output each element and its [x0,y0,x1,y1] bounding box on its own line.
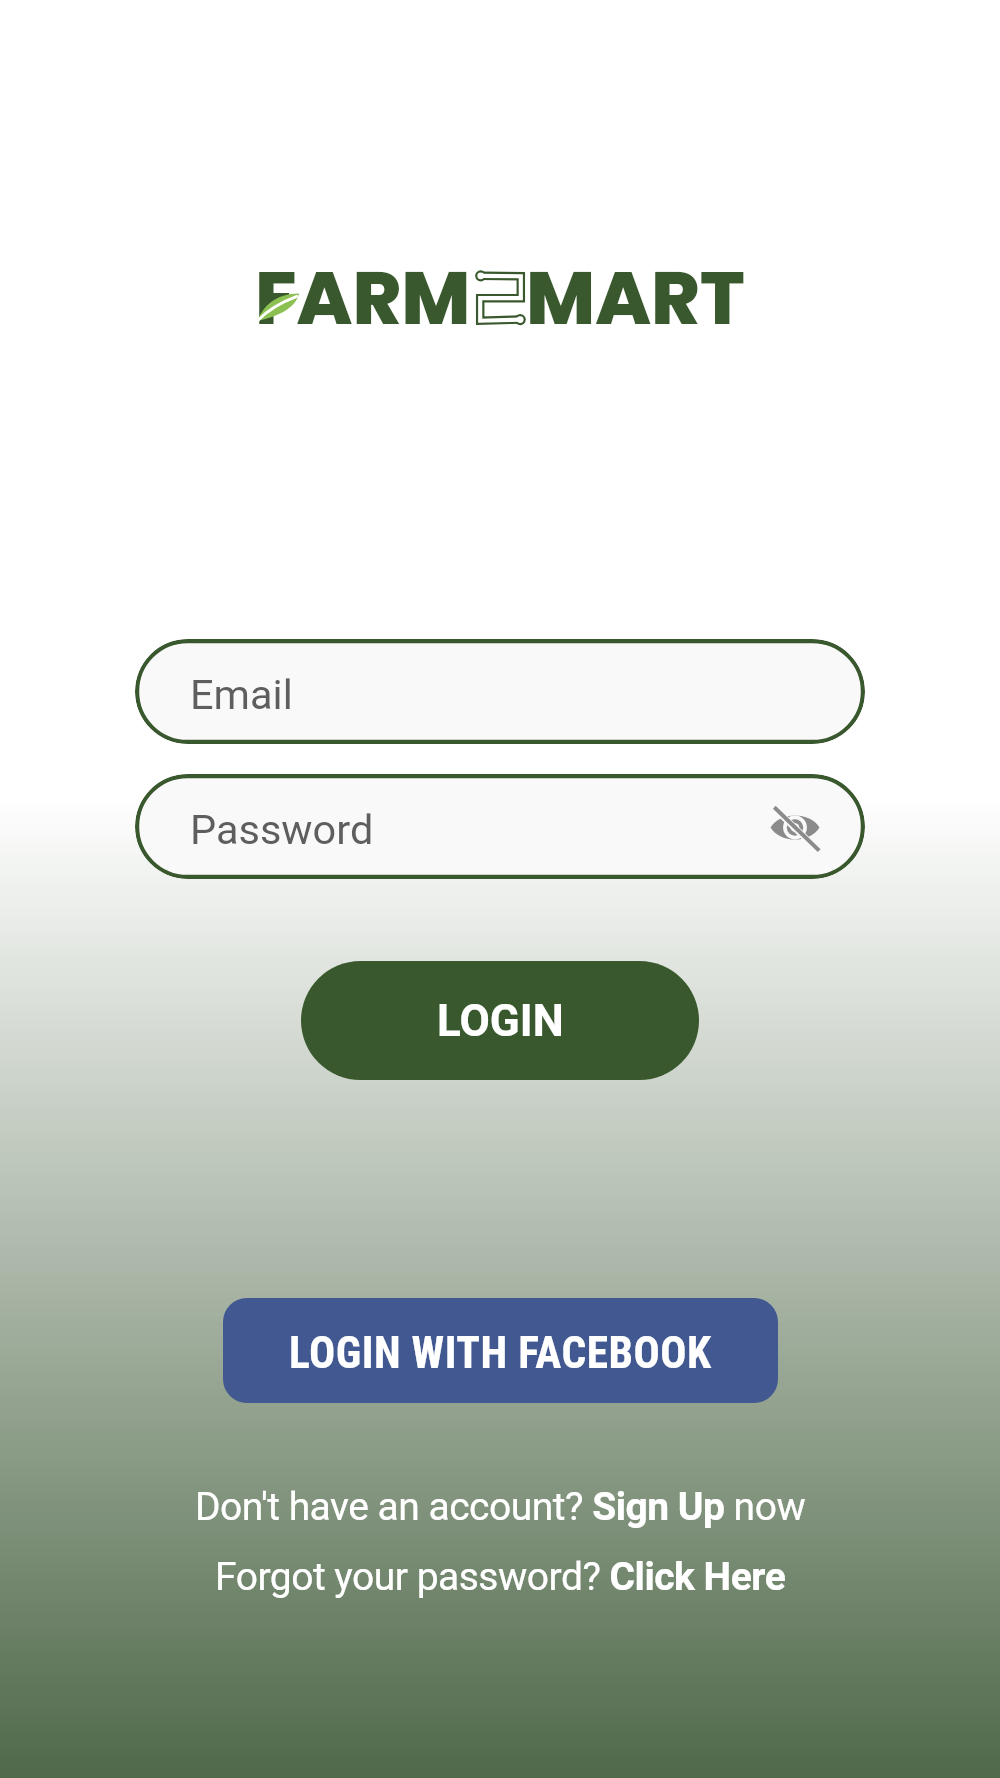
staticText: LOGIN [437,995,564,1047]
staticText: MART [526,246,745,350]
button[interactable]: Email [135,639,865,744]
staticText: FARM [255,246,471,350]
staticText: Email [190,670,293,719]
button[interactable]: LOGIN WITH FACEBOOK [223,1298,778,1403]
button[interactable]: Don't have an account? Sign Up now [191,1484,810,1530]
button[interactable]: Toggle password visibility [763,795,827,859]
button[interactable]: Password [135,774,865,879]
staticText: Don't have an account? Sign Up now [195,1484,806,1530]
button[interactable]: Forgot your password? Click Here [211,1554,790,1600]
staticText: LOGIN WITH FACEBOOK [289,1328,712,1379]
staticText: Password [190,805,374,854]
staticText: Forgot your password? Click Here [215,1554,786,1600]
button[interactable]: LOGIN [301,961,699,1080]
